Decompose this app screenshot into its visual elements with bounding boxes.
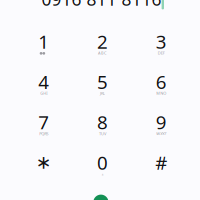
staticText: WXYZ [156, 131, 166, 136]
staticText: 3 [156, 29, 167, 54]
button[interactable]: 2 [73, 33, 132, 73]
staticText: PQRS [39, 131, 48, 136]
button[interactable]: 0 [73, 154, 132, 194]
staticText: 7 [38, 110, 49, 134]
staticText: 9 [156, 110, 167, 134]
staticText: 1 [38, 29, 49, 54]
staticText: TUV [99, 131, 106, 136]
button[interactable]: ∗ [14, 154, 73, 194]
staticText: 8 [97, 110, 108, 134]
button[interactable]: 4 [14, 73, 73, 114]
button[interactable]: # [132, 154, 190, 194]
button[interactable]: 3 [132, 33, 190, 73]
staticText: ∗ [36, 152, 52, 173]
staticText: GHI [40, 91, 47, 96]
staticText: 4 [38, 69, 49, 94]
staticText: DEF [158, 50, 165, 56]
button[interactable]: 7 [14, 114, 73, 154]
staticText: # [155, 150, 167, 175]
button[interactable]: 6 [132, 73, 190, 114]
staticText: 5 [97, 69, 108, 94]
button[interactable]: 5 [73, 73, 132, 114]
staticText: 2 [97, 29, 108, 54]
staticText: 6 [156, 69, 167, 94]
button[interactable]: 9 [132, 114, 190, 154]
staticText: + [101, 171, 103, 176]
staticText: JKL [100, 91, 105, 96]
button[interactable]: Call [93, 195, 108, 200]
staticText: MNO [156, 91, 166, 96]
button[interactable]: 8 [73, 114, 132, 154]
staticText: 0916 811 8116 [41, 0, 161, 10]
staticText: 0 [97, 150, 108, 175]
button[interactable]: 1 voicemail [14, 33, 73, 73]
staticText: ABC [98, 50, 107, 56]
